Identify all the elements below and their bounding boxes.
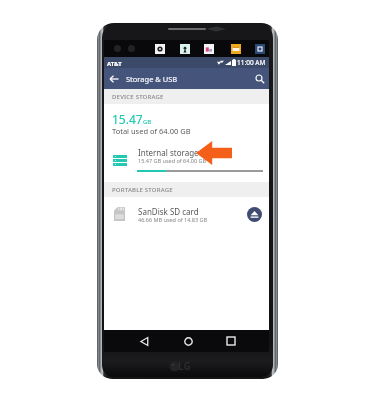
staticText: PORTABLE STORAGE (112, 186, 173, 194)
button[interactable]: Eject SD card (245, 205, 263, 223)
button[interactable]: Search (250, 69, 269, 88)
staticText: 46.66 MB used of 14.83 GB (138, 216, 208, 223)
staticText: 11:00 AM (237, 58, 266, 67)
staticText: SanDisk SD card (138, 206, 199, 217)
button[interactable]: Navigate up (104, 69, 123, 88)
staticText: GB (143, 118, 152, 126)
staticText: Total used of 64.00 GB (112, 126, 191, 136)
button[interactable]: Home (179, 330, 197, 352)
staticText: 15.47 (112, 111, 143, 127)
staticText: Internal storage (138, 147, 199, 158)
staticText: 15.47 GB used of 64.00 GB (138, 157, 207, 164)
staticText: LG (178, 359, 191, 373)
button[interactable]: Back (135, 330, 153, 352)
staticText: DEVICE STORAGE (112, 93, 164, 101)
button[interactable]: Recent apps (222, 330, 240, 352)
staticText: Storage & USB (126, 74, 178, 84)
button[interactable]: SanDisk SD card (104, 201, 269, 229)
button[interactable]: Internal storage (104, 145, 269, 171)
staticText: AT&T (107, 60, 122, 68)
